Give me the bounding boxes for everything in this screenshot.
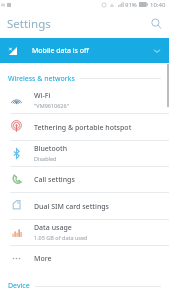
staticText: Wi-Fi (34, 91, 51, 101)
button[interactable]: Tethering & portable hotspot (0, 114, 169, 141)
staticText: Tethering & portable hotspot (34, 123, 132, 133)
staticText: Data usage (34, 223, 72, 233)
staticText: Settings (7, 16, 51, 32)
staticText: Mobile data is off (32, 46, 89, 56)
button[interactable]: Call settings (0, 167, 169, 193)
button[interactable]: Bluetooth (0, 141, 169, 167)
button[interactable]: Dual SIM card settings (0, 193, 169, 220)
staticText: Bluetooth (34, 144, 68, 154)
staticText: 91% (125, 1, 137, 9)
staticText: Call settings (34, 175, 75, 185)
button[interactable]: Search (146, 14, 166, 34)
button[interactable]: Wi-Fi (0, 88, 169, 114)
button[interactable]: Data usage (0, 220, 169, 246)
staticText: "VM9610626" (34, 102, 69, 109)
staticText: Dual SIM card settings (34, 202, 110, 212)
button[interactable]: Mobile data is off (0, 38, 169, 63)
staticText: Wireless & networks (8, 74, 75, 84)
staticText: 1.05 GB of data used (34, 234, 88, 241)
button[interactable]: More (0, 246, 169, 272)
staticText: More (34, 254, 52, 264)
staticText: Device (8, 281, 30, 291)
staticText: Disabled (34, 155, 57, 162)
staticText: 10:40 (150, 1, 166, 9)
